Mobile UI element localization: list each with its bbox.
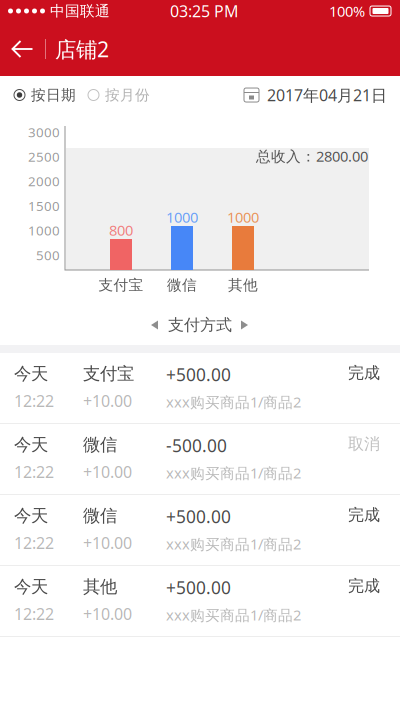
staticText: +10.00 (83, 461, 132, 482)
button[interactable]: 今天 (0, 566, 400, 637)
staticText: 12:22 (14, 390, 54, 411)
staticText: 1000 (227, 207, 259, 227)
button[interactable]: 按日期 (14, 86, 76, 104)
staticText: 今天 (14, 363, 48, 384)
staticText: 完成 (348, 505, 380, 525)
staticText: 其他 (83, 576, 117, 597)
staticText: 支付宝 (83, 363, 134, 384)
staticText: 今天 (14, 434, 48, 455)
staticText: 今天 (14, 576, 48, 597)
staticText: 12:22 (14, 532, 54, 553)
button[interactable]: 2017年04月21日 (244, 84, 387, 106)
button[interactable]: 返回 (0, 22, 45, 76)
staticText: 03:25 PM (170, 0, 239, 22)
staticText: 2017年04月21日 (267, 84, 387, 106)
staticText: 1000 (28, 221, 60, 239)
staticText: 2500 (28, 148, 60, 165)
staticText: 500 (36, 246, 60, 264)
staticText: 按月份 (105, 86, 150, 104)
button[interactable]: 上一个 (151, 320, 159, 330)
staticText: +10.00 (83, 390, 132, 411)
button[interactable]: 今天 (0, 495, 400, 566)
staticText: 12:22 (14, 461, 54, 482)
staticText: xxx购买商品1/商品2 (166, 605, 301, 625)
staticText: -500.00 (166, 434, 227, 457)
staticText: 完成 (348, 576, 380, 596)
staticText: 2000 (28, 172, 60, 190)
staticText: 店铺2 (55, 35, 109, 63)
staticText: +10.00 (83, 532, 132, 553)
staticText: xxx购买商品1/商品2 (166, 463, 301, 483)
staticText: 1500 (28, 197, 60, 215)
staticText: 100% (329, 1, 365, 21)
staticText: 微信 (83, 434, 117, 455)
staticText: 取消 (348, 434, 380, 454)
button[interactable]: 按月份 (76, 86, 150, 104)
staticText: 微信 (83, 505, 117, 526)
staticText: xxx购买商品1/商品2 (166, 534, 301, 554)
staticText: 微信 (167, 276, 197, 294)
button[interactable]: 今天 (0, 424, 400, 495)
button[interactable]: 下一个 (241, 320, 249, 330)
staticText: +500.00 (166, 505, 231, 528)
staticText: xxx购买商品1/商品2 (166, 392, 301, 412)
staticText: 总收入：2800.00 (256, 146, 368, 166)
staticText: 今天 (14, 505, 48, 526)
staticText: 800 (109, 220, 133, 240)
staticText: +500.00 (166, 576, 231, 599)
staticText: 支付方式 (168, 315, 232, 335)
staticText: +10.00 (83, 603, 132, 624)
staticText: 3000 (28, 123, 60, 141)
staticText: 12:22 (14, 603, 54, 624)
staticText: 1000 (166, 207, 198, 227)
staticText: 完成 (348, 363, 380, 383)
staticText: 中国联通 (50, 2, 110, 20)
staticText: +500.00 (166, 363, 231, 386)
staticText: 支付宝 (98, 276, 143, 294)
staticText: 按日期 (31, 86, 76, 104)
staticText: 其他 (228, 276, 258, 294)
button[interactable]: 今天 (0, 353, 400, 424)
